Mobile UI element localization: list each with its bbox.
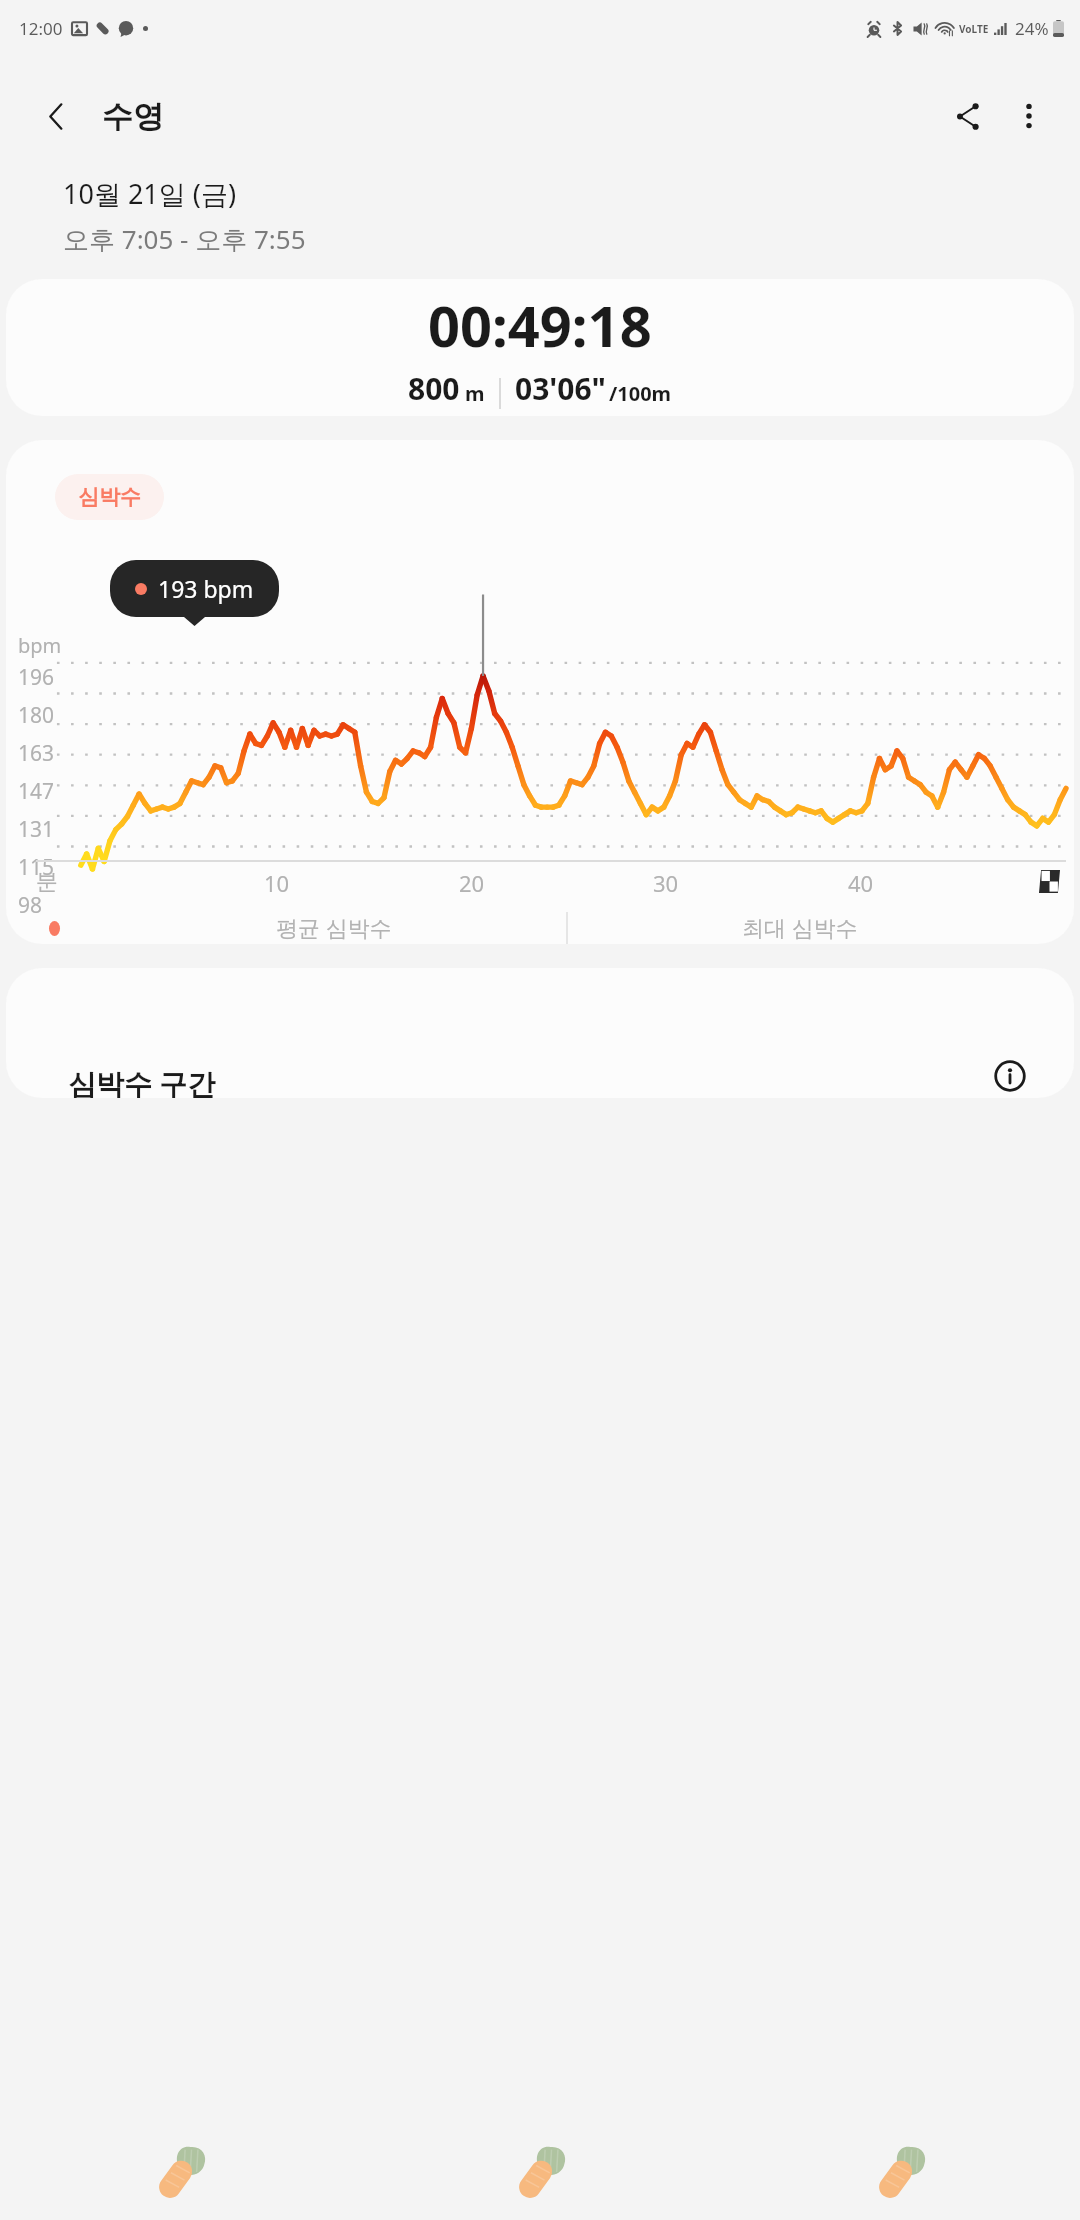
button[interactable]: Back: [26, 86, 86, 146]
button[interactable]: 심박수: [55, 474, 164, 520]
staticText: 분: [36, 868, 58, 896]
button[interactable]: Recents: [0, 2124, 360, 2220]
staticText: 03'06": [515, 368, 606, 409]
staticText: 수영: [102, 97, 164, 136]
button[interactable]: Back: [720, 2124, 1080, 2220]
staticText: 147: [18, 777, 55, 806]
staticText: 30: [653, 868, 679, 898]
staticText: /100m: [609, 380, 672, 407]
staticText: 심박수: [78, 484, 141, 510]
staticText: 10월 21일 (금): [63, 175, 237, 212]
button[interactable]: More options: [998, 85, 1060, 147]
staticText: bpm: [18, 632, 62, 659]
button[interactable]: 심박수: [6, 440, 1074, 944]
staticText: 평균 심박수: [276, 912, 392, 942]
staticText: 00:49:18: [428, 287, 652, 363]
staticText: 12:00: [19, 17, 63, 40]
button[interactable]: Home: [360, 2124, 720, 2220]
staticText: 오후 7:05 - 오후 7:55: [63, 221, 306, 257]
staticText: 20: [459, 868, 485, 898]
staticText: 196: [18, 663, 55, 692]
staticText: 800: [408, 368, 460, 409]
staticText: 98: [18, 891, 43, 920]
staticText: VoLTE: [959, 22, 989, 36]
staticText: 180: [18, 701, 55, 730]
staticText: 심박수 구간: [68, 1064, 216, 1098]
staticText: 193 bpm: [158, 573, 254, 604]
button[interactable]: Share: [936, 85, 998, 147]
staticText: m: [465, 380, 485, 407]
staticText: 115: [18, 853, 55, 882]
staticText: 10: [264, 868, 290, 898]
staticText: 최대 심박수: [742, 912, 858, 942]
button[interactable]: 심박수 구간: [6, 968, 1074, 1098]
staticText: 131: [18, 815, 55, 844]
staticText: 24%: [1015, 17, 1049, 40]
staticText: 163: [18, 739, 55, 768]
staticText: 40: [848, 868, 874, 898]
button[interactable]: 00:49:18: [6, 279, 1074, 416]
